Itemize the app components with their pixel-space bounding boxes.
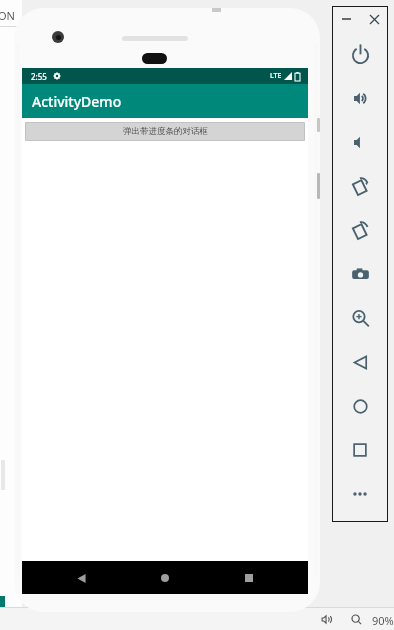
staticText: ON [0, 8, 15, 23]
button[interactable]: 弹出带进度条的对话框 [25, 122, 305, 141]
staticText: 90% [372, 613, 394, 628]
button[interactable]: Sound [317, 610, 335, 628]
button[interactable]: Home [332, 384, 388, 428]
button[interactable]: Volume down [332, 120, 388, 164]
button[interactable]: Zoom [332, 296, 388, 340]
button[interactable]: Back [332, 340, 388, 384]
button[interactable]: More [332, 472, 388, 516]
button[interactable]: Take screenshot [332, 252, 388, 296]
button[interactable]: Search [347, 610, 365, 628]
button[interactable]: Power [332, 32, 388, 76]
button[interactable]: Rotate right [332, 208, 388, 252]
staticText: LTE [270, 71, 282, 81]
button[interactable]: Back [66, 563, 96, 593]
button[interactable]: Overview [332, 428, 388, 472]
staticText: 2:55 [31, 71, 47, 82]
button[interactable]: Home [150, 563, 180, 593]
button[interactable]: Volume up [332, 76, 388, 120]
staticText: ActivityDemo [32, 92, 122, 111]
button[interactable]: Rotate left [332, 164, 388, 208]
button[interactable]: Minimize [336, 9, 356, 29]
staticText: 弹出带进度条的对话框 [123, 126, 208, 137]
button[interactable]: Close [364, 9, 384, 29]
button[interactable]: Recent apps [234, 563, 264, 593]
